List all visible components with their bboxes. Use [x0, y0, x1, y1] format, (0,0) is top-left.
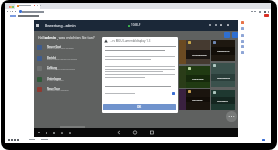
staticText: OK	[137, 105, 142, 109]
button[interactable]: More options	[226, 111, 237, 122]
staticText: Weinkarte	[192, 77, 204, 80]
button[interactable]: Speisekarte	[211, 63, 235, 87]
staticText: Tageskarte	[217, 49, 230, 52]
button[interactable]: Recents	[148, 128, 156, 137]
staticText: Hallo	[38, 35, 48, 40]
button[interactable]: Notifications	[220, 24, 222, 26]
staticText: Einen neuen Gast anlegen	[47, 47, 74, 50]
staticText: Zahlung vom Gast erfassen	[47, 68, 76, 71]
staticText: E-Mail aufbauen	[47, 79, 64, 82]
button[interactable]: Neuer Gast	[36, 44, 100, 54]
button[interactable]: Sonstiges	[211, 90, 235, 110]
button[interactable]: Back	[115, 128, 123, 137]
button[interactable]: Bericht	[36, 55, 100, 65]
button[interactable]: Neue Tour	[36, 86, 100, 96]
button[interactable]: Tool 4	[241, 40, 244, 43]
button[interactable]: Tool 1	[241, 21, 244, 24]
staticText: , was möchten Sie tun?	[57, 35, 95, 40]
staticText: admin	[45, 35, 57, 40]
button[interactable]: Refresh	[69, 132, 71, 134]
button[interactable]: Grid view	[224, 32, 230, 38]
button[interactable]: Tool 2	[241, 27, 244, 30]
staticText: Speisekarte	[217, 76, 231, 79]
staticText: Cocktailkarte	[192, 53, 207, 56]
staticText: Unterlagen	[47, 77, 62, 80]
staticText: Einen neuen Bericht erstellen	[47, 58, 78, 61]
button[interactable]: OK	[103, 104, 176, 110]
button[interactable]: Tool 3	[241, 34, 244, 37]
staticText: Bewertung - admin	[45, 23, 76, 28]
button[interactable]: Tool 5	[241, 45, 244, 48]
button[interactable]: Unterlagen	[36, 76, 100, 86]
staticText: ...rs MGU Lumenbildisplay 1.3	[110, 39, 151, 43]
button[interactable]: Power	[61, 132, 63, 134]
staticText: Zahlung	[47, 66, 58, 69]
staticText: Getränke	[192, 98, 203, 101]
button[interactable]: Search	[232, 32, 238, 38]
button[interactable]: Home	[131, 128, 139, 137]
staticText: Neuer Gast	[47, 45, 62, 48]
button[interactable]: Zahlung	[36, 65, 100, 75]
button[interactable]: Cocktailkarte	[186, 40, 210, 64]
button[interactable]: Tool 6	[241, 51, 244, 54]
button[interactable]: Account	[227, 24, 229, 26]
button[interactable]: Getränke	[186, 89, 210, 110]
staticText: Sonstiges	[217, 99, 228, 102]
staticText: Neue Tour	[47, 87, 60, 90]
staticText: Termine neu anlegen	[47, 89, 69, 92]
staticText: 10:BLF	[131, 23, 141, 27]
button[interactable]: Tageskarte	[211, 40, 235, 61]
button[interactable]: Weinkarte	[186, 66, 210, 88]
button[interactable]: Do not show again	[172, 92, 175, 95]
staticText: Bericht	[47, 56, 57, 59]
